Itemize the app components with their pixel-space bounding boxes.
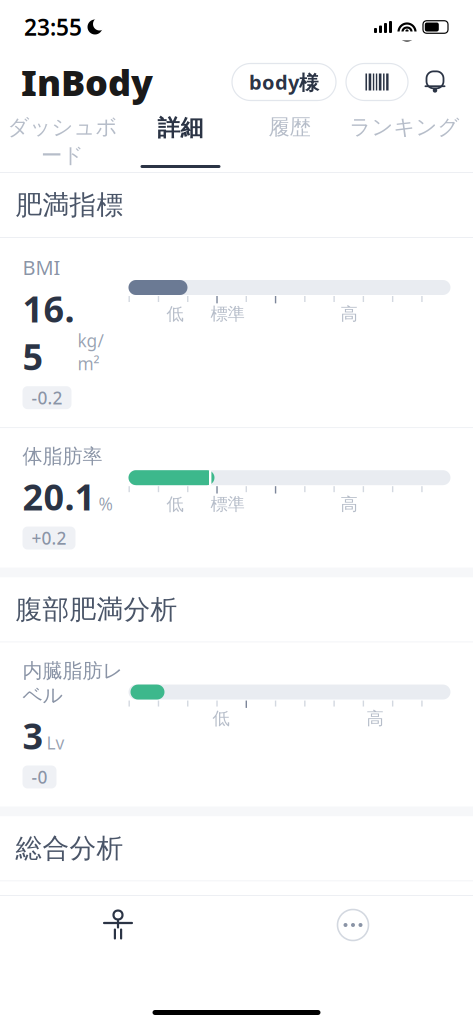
button[interactable]: More [331, 903, 375, 947]
staticText: 総合分析 [15, 832, 123, 865]
button[interactable]: 詳細 [121, 106, 239, 168]
staticText: 高 [340, 493, 357, 515]
staticText: 体脂肪率 [22, 444, 102, 469]
staticText: 基礎代謝量 [22, 897, 122, 922]
staticText: InBody [21, 58, 153, 106]
staticText: BMI [22, 254, 60, 281]
staticText: 高 [340, 303, 357, 325]
staticText: +0.2 [31, 526, 66, 549]
staticText: 肥満指標 [15, 189, 123, 221]
button[interactable]: 基礎代謝量 [0, 881, 473, 1024]
button[interactable]: Body [96, 903, 140, 947]
staticText: 低 [166, 493, 183, 515]
staticText: % [98, 492, 112, 515]
staticText: 20.1 [22, 473, 95, 520]
staticText: -0 [31, 765, 47, 788]
button[interactable]: Scan barcode [346, 63, 408, 100]
staticText: 低 [166, 303, 183, 325]
staticText: 低 [212, 708, 229, 729]
button[interactable]: ランキング [339, 106, 469, 176]
staticText: ランキング [349, 114, 459, 140]
staticText: -0.2 [31, 386, 62, 409]
staticText: body様 [249, 69, 319, 95]
staticText: 標準 [210, 303, 244, 325]
button[interactable]: ダッシュボ [3, 106, 121, 176]
staticText: 詳細 [157, 114, 203, 142]
staticText: ード [41, 142, 84, 168]
button[interactable]: 体脂肪率 [0, 428, 473, 568]
staticText: kg/m² [77, 329, 103, 375]
button[interactable]: Notifications [418, 63, 452, 100]
staticText: Lv [46, 731, 64, 754]
staticText: 内臓脂肪レベル [22, 658, 122, 708]
staticText: 腹部肥満分析 [15, 593, 177, 626]
staticText: 3 [22, 712, 43, 759]
button[interactable]: 履歴 [239, 106, 339, 176]
staticText: 標準 [210, 493, 244, 515]
staticText: 23:55 [24, 12, 82, 42]
staticText: 高 [366, 708, 383, 729]
staticText: 16.5 [22, 285, 74, 380]
button[interactable]: 内臓脂肪レベル [0, 642, 473, 806]
button[interactable]: BMI [0, 238, 473, 427]
button[interactable]: body様 [232, 63, 336, 100]
staticText: ダッシュボ [7, 114, 117, 140]
staticText: 履歴 [268, 114, 310, 140]
